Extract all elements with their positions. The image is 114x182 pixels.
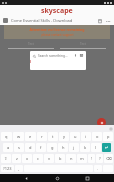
staticText: s <box>18 145 20 150</box>
staticText: r <box>41 134 43 139</box>
staticText: e <box>29 134 32 139</box>
staticText: y <box>63 134 66 139</box>
button[interactable]: ⌫ <box>104 154 113 163</box>
staticText: g <box>51 145 54 150</box>
button[interactable]: h <box>58 143 68 152</box>
staticText: ••• <box>106 19 111 24</box>
staticText: n <box>70 156 73 161</box>
button[interactable]: Come Essential Skills - Download <box>0 16 114 25</box>
staticText: x <box>26 156 29 161</box>
button[interactable]: . <box>94 165 102 172</box>
button[interactable]: f <box>36 143 46 152</box>
staticText: Come Essential Skills - Download <box>11 18 97 23</box>
staticText: Search something… <box>38 54 73 58</box>
button[interactable]: Scan barcode <box>79 53 84 58</box>
staticText: b <box>59 156 62 161</box>
button[interactable]: v <box>44 154 54 163</box>
button[interactable]: More options <box>105 18 111 24</box>
button[interactable]: Recent apps <box>84 175 91 182</box>
button[interactable]: l <box>91 143 101 152</box>
staticText: c <box>37 156 39 161</box>
staticText: , <box>18 166 20 171</box>
button[interactable]: Home <box>54 175 61 182</box>
staticText: Attention: no license remaining <box>29 27 85 32</box>
button[interactable]: z <box>12 154 21 163</box>
button[interactable]: i <box>81 132 91 141</box>
button[interactable]: w <box>13 132 24 141</box>
staticText: ⇧ <box>4 156 8 161</box>
button[interactable]: ? <box>96 154 103 163</box>
button[interactable]: Search <box>32 54 36 58</box>
staticText: ↵ <box>105 145 109 150</box>
button[interactable]: a <box>3 143 13 152</box>
staticText: ? <box>99 156 101 161</box>
button[interactable]: x <box>22 154 32 163</box>
staticText: d <box>29 145 32 150</box>
button[interactable]: Enter <box>102 143 111 152</box>
staticText: please contact support <box>41 33 74 37</box>
button[interactable]: ?123 <box>1 165 14 172</box>
button[interactable]: , <box>15 165 23 172</box>
staticText: a <box>7 145 10 150</box>
button[interactable]: g <box>47 143 57 152</box>
staticText: ⌫ <box>106 156 112 161</box>
button[interactable]: Voice search <box>73 53 78 58</box>
staticText: j <box>73 145 75 150</box>
button[interactable]: Keyboard settings <box>109 127 112 130</box>
staticText: h <box>62 145 65 150</box>
staticText: u <box>74 134 77 139</box>
staticText: o <box>96 134 99 139</box>
staticText: Text <box>80 42 86 46</box>
button[interactable]: d <box>25 143 35 152</box>
staticText: ! <box>91 156 93 161</box>
button[interactable]: Add <box>97 118 106 127</box>
staticText: q <box>5 134 8 139</box>
staticText: l <box>95 145 97 150</box>
staticText: p <box>107 134 110 139</box>
button[interactable]: k <box>80 143 90 152</box>
staticText: Text <box>28 42 34 46</box>
staticText: w <box>17 134 21 139</box>
button[interactable]: Delete <box>97 18 103 24</box>
button[interactable]: s <box>14 143 24 152</box>
button[interactable]: n <box>66 154 76 163</box>
button[interactable]: Back <box>23 175 30 182</box>
staticText: v <box>48 156 51 161</box>
button[interactable]: e <box>25 132 36 141</box>
staticText: . <box>97 166 99 171</box>
button[interactable]: m <box>77 154 87 163</box>
button[interactable]: b <box>55 154 65 163</box>
button[interactable]: ⇧ <box>1 154 11 163</box>
button[interactable]: ! <box>88 154 95 163</box>
staticText: m <box>80 156 84 161</box>
staticText: t <box>52 134 54 139</box>
staticText: i <box>85 134 87 139</box>
button[interactable]: q <box>1 132 12 141</box>
staticText: ?123 <box>3 166 12 171</box>
staticText: f <box>40 145 42 150</box>
button[interactable]: p <box>103 132 113 141</box>
staticText: z <box>16 156 18 161</box>
button[interactable]: u <box>70 132 80 141</box>
button[interactable]: r <box>37 132 47 141</box>
button[interactable]: Text <box>60 42 106 49</box>
button[interactable]: c <box>33 154 43 163</box>
staticText: skyscape <box>41 6 73 16</box>
button[interactable]: o <box>92 132 102 141</box>
staticText: k <box>84 145 87 150</box>
button[interactable]: j <box>69 143 79 152</box>
button[interactable]: y <box>59 132 69 141</box>
button[interactable]: t <box>48 132 58 141</box>
button[interactable]: Text <box>8 42 54 49</box>
